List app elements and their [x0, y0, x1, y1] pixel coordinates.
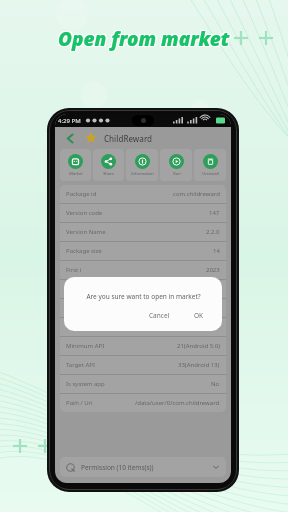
- staticText: Share: [103, 171, 114, 176]
- staticText: 147: [209, 209, 220, 217]
- staticText: Package id: [66, 190, 97, 198]
- button[interactable]: First i: [60, 261, 226, 279]
- staticText: Minimum API: [66, 342, 105, 350]
- button[interactable]: Target API: [60, 356, 226, 374]
- staticText: Open from market: [57, 25, 229, 51]
- staticText: com.childreward: [173, 190, 220, 198]
- staticText: First i: [66, 266, 82, 274]
- button[interactable]: Run: [160, 149, 192, 181]
- staticText: Open from market: [58, 27, 230, 53]
- staticText: Open from market: [59, 27, 231, 53]
- button[interactable]: Compile SDK Version: [60, 318, 226, 336]
- button[interactable]: Information: [126, 149, 158, 181]
- staticText: Is system app: [66, 380, 105, 388]
- button[interactable]: Package size: [60, 242, 226, 260]
- staticText: Permission (10 items(s)): [81, 463, 154, 472]
- staticText: Uninstall: [202, 171, 219, 176]
- staticText: Package size: [66, 247, 102, 255]
- staticText: Open from market: [57, 27, 229, 53]
- staticText: Information: [131, 171, 154, 176]
- button[interactable]: Back: [62, 130, 78, 146]
- staticText: OK: [194, 311, 204, 320]
- staticText: 33(Android 13): [178, 361, 220, 369]
- staticText: Open from market: [57, 26, 229, 52]
- staticText: Path / Uri: [66, 399, 93, 407]
- staticText: Run: [173, 171, 181, 176]
- button[interactable]: Package id: [60, 185, 226, 203]
- staticText: Version Name: [66, 228, 106, 236]
- button[interactable]: Share: [93, 149, 124, 181]
- button[interactable]: Path / Uri: [60, 394, 226, 412]
- staticText: 21(Android 5.0): [177, 342, 220, 350]
- button[interactable]: Minimum API: [60, 337, 226, 355]
- staticText: Open from market: [58, 26, 230, 52]
- button[interactable]: Open in market: [60, 149, 91, 181]
- button[interactable]: Version code: [60, 204, 226, 222]
- staticText: Market: [69, 171, 83, 176]
- staticText: Open from market: [59, 26, 231, 52]
- staticText: 2.2.0: [206, 228, 220, 236]
- staticText: Are you sure want to open in market?: [86, 292, 201, 301]
- staticText: 4:29 PM: [58, 117, 81, 125]
- button[interactable]: Cancel: [143, 309, 176, 322]
- staticText: Version code: [66, 209, 103, 217]
- button[interactable]: OK: [188, 309, 210, 322]
- staticText: Cancel: [149, 311, 170, 320]
- button[interactable]: Permission (10 items(s)): [60, 457, 226, 477]
- staticText: Compile SDK Version: [66, 323, 125, 331]
- button[interactable]: Version Name: [60, 223, 226, 241]
- button[interactable]: Uninstall: [194, 149, 226, 181]
- staticText: ChildReward: [104, 133, 153, 144]
- staticText: Target API: [66, 361, 95, 369]
- button[interactable]: Last u: [60, 280, 226, 298]
- staticText: 2023: [206, 266, 220, 274]
- staticText: 14: [213, 247, 220, 255]
- staticText: Open from market: [58, 25, 230, 51]
- staticText: Open from market: [59, 25, 231, 51]
- staticText: /data/user/0/com.childreward: [135, 399, 220, 407]
- button[interactable]: Instal: [60, 299, 226, 317]
- staticText: No: [211, 380, 220, 388]
- staticText: Open from market: [58, 26, 230, 52]
- staticText: 33: [213, 323, 220, 331]
- button[interactable]: Is system app: [60, 375, 226, 393]
